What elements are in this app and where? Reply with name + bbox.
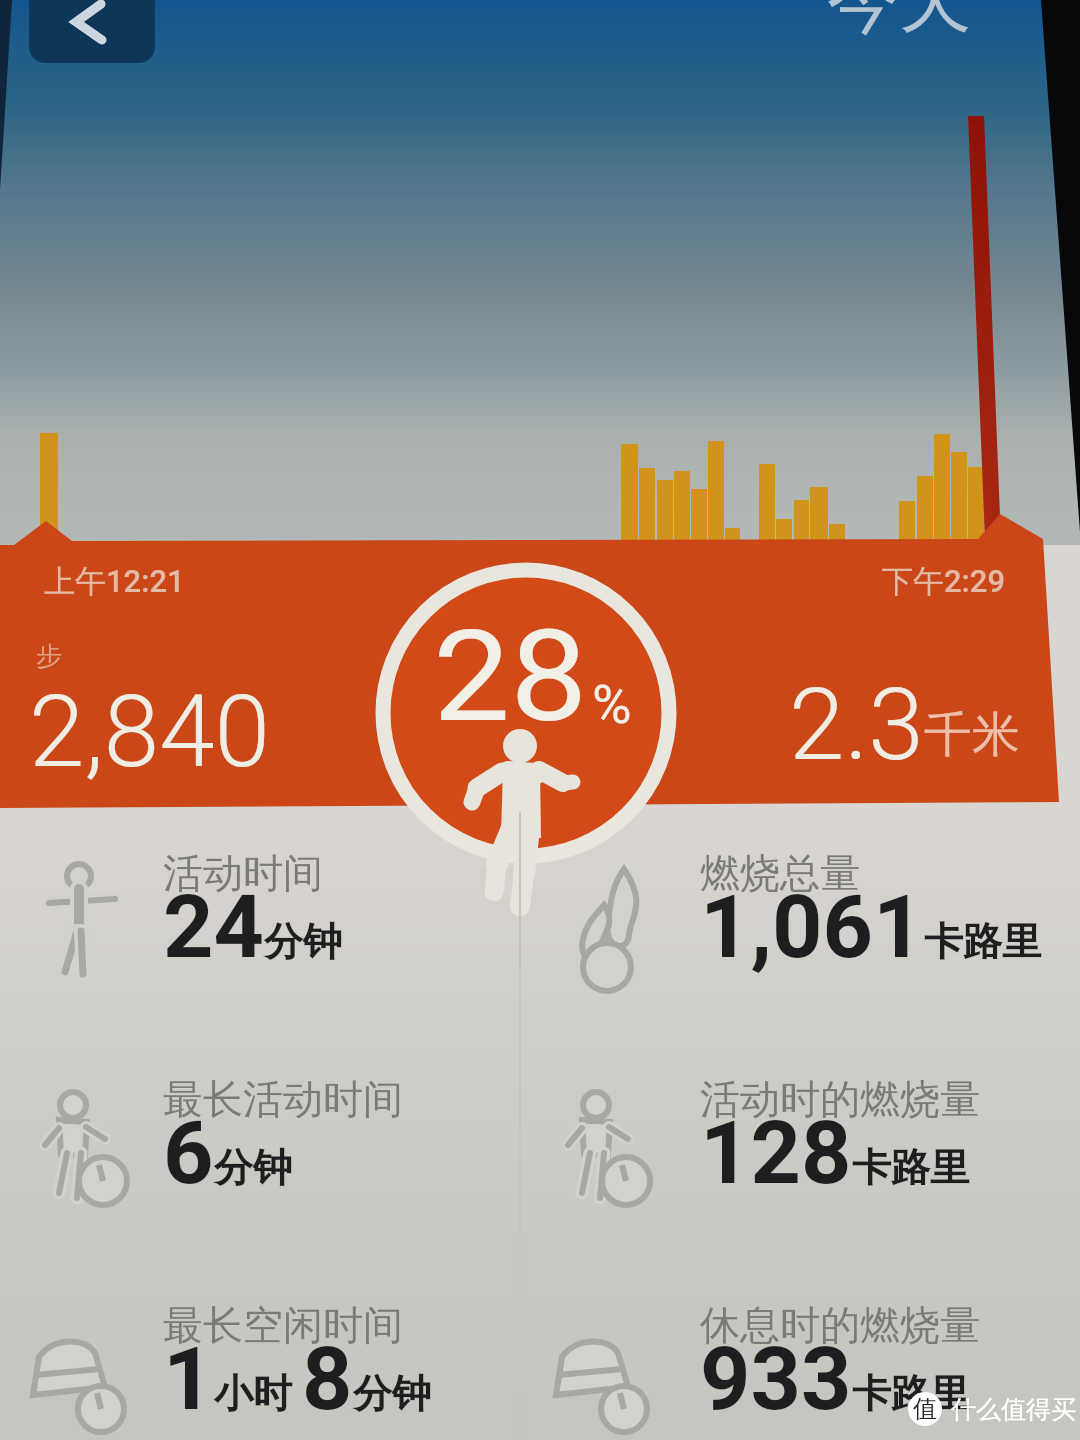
staticText: 步 bbox=[36, 640, 62, 673]
staticText: 上午12:21 bbox=[44, 562, 185, 601]
staticText: 1,061 bbox=[700, 875, 924, 978]
staticText: 分钟 bbox=[214, 1143, 292, 1192]
staticText: 活动时间 bbox=[163, 848, 323, 898]
staticText: 最长空闲时间 bbox=[163, 1300, 403, 1350]
staticText: 分钟 bbox=[264, 917, 342, 966]
staticText: 128 bbox=[700, 1101, 852, 1204]
button[interactable]: 活动时的燃烧量 bbox=[520, 1064, 1080, 1254]
staticText: 6 bbox=[163, 1101, 214, 1204]
staticText: 小时 bbox=[214, 1369, 302, 1418]
button[interactable]: Back bbox=[29, 0, 155, 63]
staticText: 28 bbox=[433, 603, 588, 751]
staticText: 分钟 bbox=[353, 1369, 431, 1418]
staticText: % bbox=[592, 673, 632, 736]
staticText: 卡路里 bbox=[924, 917, 1041, 966]
staticText: 今天 bbox=[827, 0, 971, 47]
button[interactable]: 最长活动时间 bbox=[0, 1064, 520, 1254]
staticText: 卡路里 bbox=[852, 1143, 969, 1192]
staticText: 933 bbox=[700, 1327, 852, 1430]
staticText: 24 bbox=[163, 875, 264, 978]
staticText: 什么值得买 bbox=[951, 1394, 1076, 1425]
button[interactable]: 休息时的燃烧量 bbox=[520, 1290, 1080, 1440]
button[interactable]: 活动时间 bbox=[0, 838, 520, 1028]
staticText: 休息时的燃烧量 bbox=[700, 1300, 980, 1350]
staticText: 2,840 bbox=[29, 673, 271, 790]
button[interactable]: 燃烧总量 bbox=[520, 838, 1080, 1028]
staticText: 燃烧总量 bbox=[700, 848, 860, 898]
staticText: 下午2:29 bbox=[882, 562, 1006, 601]
staticText: 千米 bbox=[924, 705, 1020, 765]
button[interactable]: 最长空闲时间 bbox=[0, 1290, 520, 1440]
staticText: 最长活动时间 bbox=[163, 1074, 403, 1124]
staticText: 2.3 bbox=[789, 666, 924, 783]
staticText: 卡路里 bbox=[852, 1369, 969, 1418]
staticText: 活动时的燃烧量 bbox=[700, 1074, 980, 1124]
staticText: 8 bbox=[302, 1327, 353, 1430]
staticText: 1 bbox=[163, 1327, 214, 1430]
staticText: 值 bbox=[913, 1394, 937, 1424]
